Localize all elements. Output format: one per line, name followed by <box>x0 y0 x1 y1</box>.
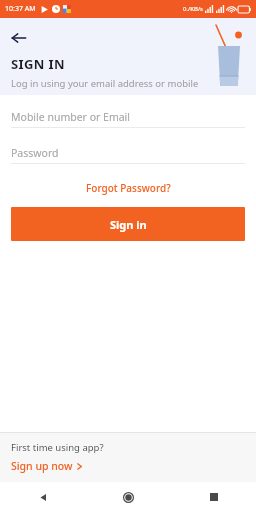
button[interactable]: Recent apps <box>171 482 256 512</box>
button[interactable]: Back <box>0 482 86 512</box>
staticText: Log in using your email address or mobil… <box>11 77 199 90</box>
button[interactable]: Password <box>0 142 256 164</box>
staticText: Password <box>11 146 59 160</box>
staticText: 10:37 AM <box>5 4 36 14</box>
staticText: Forgot Password? <box>86 181 171 195</box>
staticText: Sign up now <box>11 459 73 473</box>
button[interactable]: Sign up now <box>0 459 94 475</box>
button[interactable]: Home <box>86 482 171 512</box>
staticText: Mobile number or Email <box>11 110 131 124</box>
button[interactable]: Mobile number or Email <box>0 106 256 128</box>
button[interactable]: Forgot Password? <box>0 178 256 198</box>
staticText: 0./KB/s <box>183 5 203 13</box>
staticText: Sign in <box>110 217 147 232</box>
button[interactable]: Sign in <box>11 207 245 241</box>
button[interactable]: Back <box>11 27 33 49</box>
staticText: SIGN IN <box>11 55 66 73</box>
staticText: First time using app? <box>11 441 104 454</box>
